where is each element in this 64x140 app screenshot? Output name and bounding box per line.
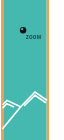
staticText: ZOOM bbox=[26, 34, 42, 40]
other: Splash screen bbox=[0, 0, 64, 140]
